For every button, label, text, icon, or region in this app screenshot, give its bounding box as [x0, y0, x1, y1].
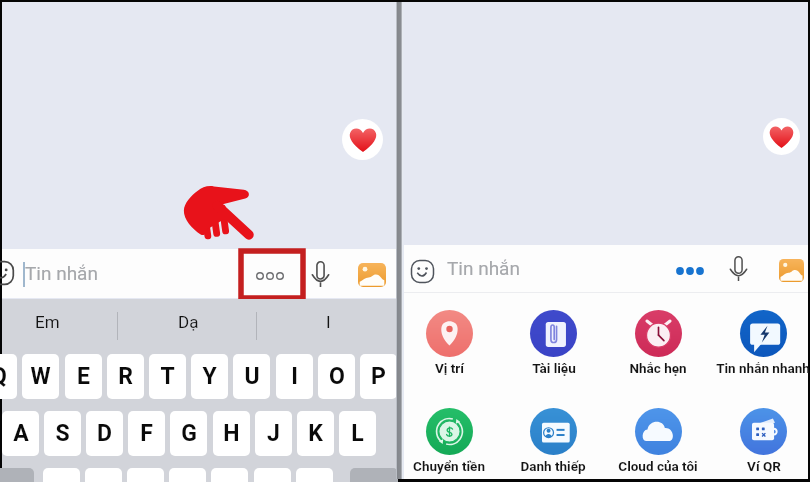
staticText: U — [244, 363, 260, 390]
button[interactable]: Heart reaction — [763, 118, 800, 155]
staticText: Tài liệu — [532, 360, 576, 376]
staticText: R — [118, 363, 133, 390]
staticText: L — [351, 420, 364, 447]
staticText: Dạ — [178, 312, 199, 332]
button[interactable]: R — [107, 354, 144, 399]
button[interactable] — [254, 468, 291, 482]
button[interactable]: Chuyển tiền — [397, 408, 501, 474]
button[interactable]: J — [255, 411, 292, 456]
staticText: Y — [202, 363, 217, 390]
button[interactable]: I — [276, 354, 313, 399]
staticText: F — [140, 420, 153, 447]
button[interactable]: Voice message — [306, 255, 334, 293]
button[interactable]: O — [318, 354, 355, 399]
staticText: Q — [0, 363, 7, 390]
button[interactable] — [211, 468, 248, 482]
staticText: I — [326, 312, 331, 332]
button[interactable]: Tài liệu — [501, 310, 605, 376]
button[interactable]: E — [65, 354, 102, 399]
button[interactable]: Y — [191, 354, 228, 399]
staticText: T — [160, 363, 175, 390]
button[interactable]: Send image — [779, 259, 804, 282]
staticText: A — [13, 420, 29, 447]
button[interactable]: G — [170, 411, 207, 456]
staticText: W — [30, 363, 51, 390]
button[interactable] — [296, 468, 333, 482]
button[interactable]: Backspace — [350, 468, 398, 482]
button[interactable]: K — [297, 411, 334, 456]
staticText: P — [371, 363, 386, 390]
button[interactable] — [85, 468, 122, 482]
staticText: D — [97, 420, 112, 447]
staticText: K — [308, 420, 323, 447]
staticText: Danh thiếp — [520, 458, 586, 474]
button[interactable]: Tin nhắn nhanh — [711, 310, 810, 376]
button[interactable]: S — [44, 411, 81, 456]
button[interactable]: H — [213, 411, 250, 456]
staticText: Chuyển tiền — [413, 458, 485, 474]
staticText: J — [267, 420, 280, 447]
button[interactable]: More options — [244, 251, 300, 296]
button[interactable]: D — [86, 411, 123, 456]
staticText: Vị trí — [435, 360, 464, 376]
button[interactable]: Ví QR — [711, 408, 810, 474]
button[interactable]: Heart reaction — [342, 119, 383, 160]
button[interactable] — [169, 468, 206, 482]
button[interactable]: L — [339, 411, 376, 456]
button[interactable] — [127, 468, 164, 482]
button[interactable]: Voice message — [726, 249, 751, 287]
staticText: Tin nhắn — [447, 257, 520, 279]
staticText: S — [55, 420, 70, 447]
button[interactable]: U — [233, 354, 270, 399]
button[interactable]: Q — [0, 354, 17, 399]
staticText: O — [329, 363, 345, 390]
button[interactable]: Danh thiếp — [501, 408, 605, 474]
staticText: I — [291, 363, 298, 390]
button[interactable]: More options — [669, 248, 713, 289]
button[interactable]: Nhắc hẹn — [606, 310, 710, 376]
staticText: Cloud của tôi — [618, 458, 698, 474]
button[interactable]: F — [128, 411, 165, 456]
button[interactable]: W — [22, 354, 59, 399]
button[interactable] — [43, 468, 80, 482]
button[interactable]: T — [149, 354, 186, 399]
staticText: Nhắc hẹn — [629, 360, 687, 376]
staticText: Tin nhắn nhanh — [716, 360, 810, 376]
button[interactable]: Vị trí — [397, 310, 501, 376]
staticText: H — [223, 420, 240, 447]
button[interactable]: A — [2, 411, 39, 456]
staticText: Tin nhắn — [25, 262, 98, 284]
staticText: Em — [35, 312, 60, 332]
staticText: G — [181, 420, 197, 447]
button[interactable]: Shift — [0, 468, 34, 482]
staticText: Ví QR — [747, 458, 781, 474]
button[interactable]: Cloud của tôi — [606, 408, 710, 474]
button[interactable]: Send image — [358, 263, 386, 287]
staticText: E — [77, 363, 90, 390]
button[interactable]: P — [360, 354, 397, 399]
